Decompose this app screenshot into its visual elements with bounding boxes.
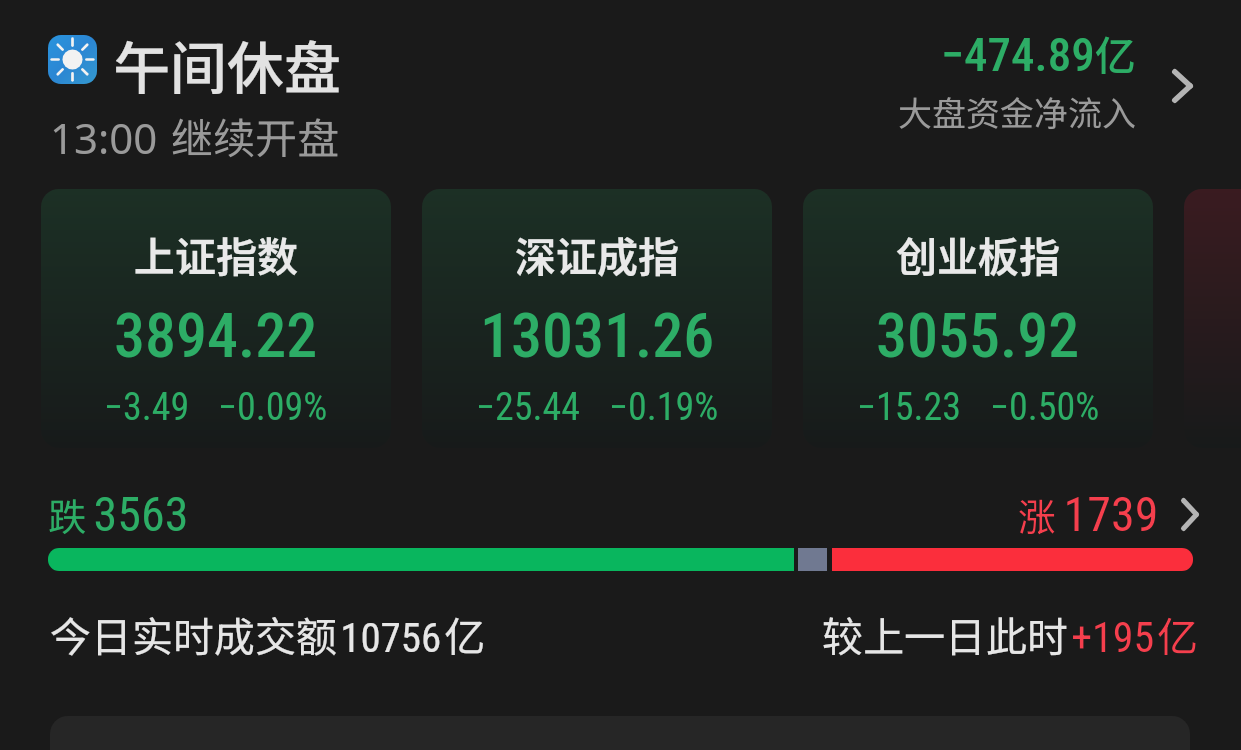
other: 天气 [48,35,97,84]
staticText: −0.09% [218,385,328,430]
button[interactable]: 创业板指 [803,189,1153,448]
staticText: 深证成指 [515,224,679,283]
staticText: 涨 1739 [1018,486,1159,542]
other: 查看大盘资金净流入 [1172,69,1193,103]
staticText: −474.89亿 [941,23,1136,82]
staticText: −0.19% [609,385,719,430]
staticText: 3055.92 [876,299,1080,372]
staticText: 创业板指 [896,224,1060,283]
staticText: 13031.26 [480,299,715,372]
staticText: 13:00 继续开盘 [50,105,340,166]
staticText: 3894.22 [114,299,318,372]
staticText: 今日实时成交额 10756 亿 [50,604,486,663]
staticText: 大盘资金净流入 [898,87,1136,136]
button[interactable]: 深证成指 [422,189,772,448]
staticText: −0.50% [990,385,1100,430]
staticText: 跌 3563 [48,486,189,542]
staticText: −25.44 [476,385,581,430]
button[interactable]: 跌 3563 [0,483,1241,545]
staticText: 午间休盘 [113,23,341,106]
button[interactable]: −474.89亿 [840,18,1200,148]
button[interactable]: 北证50 [1184,189,1241,448]
staticText: 上证指数 [134,224,298,283]
staticText: −15.23 [857,385,962,430]
staticText: 较上一日此时 +195 亿 [822,604,1199,663]
staticText: −3.49 [104,385,190,430]
button[interactable]: 上证指数 [41,189,391,448]
other: 查看涨跌家数 [1181,498,1199,531]
